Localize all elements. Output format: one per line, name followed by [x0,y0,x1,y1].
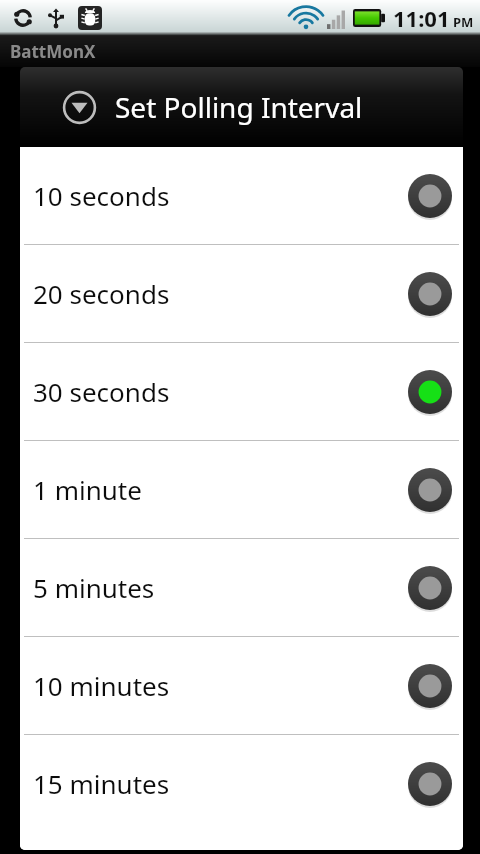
button[interactable]: 15 minutes [20,735,463,832]
staticText: 15 minutes [33,766,408,801]
button[interactable]: 10 minutes [20,637,463,734]
staticText: PM [453,13,474,31]
button[interactable]: 10 seconds [20,147,463,244]
staticText: 10 seconds [33,178,408,213]
button[interactable]: 1 minute [20,441,463,538]
staticText: 30 seconds [33,374,408,409]
button[interactable]: 20 seconds [20,245,463,342]
other: Collapse [62,90,97,125]
staticText: 10 minutes [33,668,408,703]
staticText: 1 minute [33,472,408,507]
staticText: 5 minutes [33,570,408,605]
staticText: 20 seconds [33,276,408,311]
button[interactable]: 30 seconds [20,343,463,440]
staticText: 11:01 [393,3,450,33]
button[interactable]: 5 minutes [20,539,463,636]
staticText: Set Polling Interval [115,88,363,126]
staticText: BattMonX [10,40,96,63]
